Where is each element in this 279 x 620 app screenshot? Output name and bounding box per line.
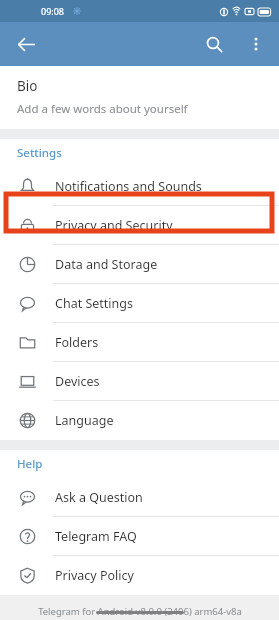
staticText: Help — [17, 456, 43, 472]
button[interactable]: Ask a Question — [0, 478, 279, 517]
staticText: Folders — [55, 334, 99, 351]
staticText: Telegram for Android v8.0.0 (2406) arm64… — [38, 605, 242, 618]
button[interactable]: Bio — [0, 66, 279, 129]
button[interactable]: Search — [196, 26, 232, 62]
button[interactable]: Back — [8, 26, 44, 62]
staticText: Privacy and Security — [55, 217, 173, 234]
staticText: Ask a Question — [55, 489, 143, 506]
staticText: 09:08 — [41, 5, 65, 17]
button[interactable]: Privacy Policy — [0, 556, 279, 595]
button[interactable]: More options — [238, 26, 274, 62]
staticText: Devices — [55, 373, 100, 390]
button[interactable]: Chat Settings — [0, 284, 279, 323]
staticText: Data and Storage — [55, 256, 158, 273]
button[interactable]: Telegram FAQ — [0, 517, 279, 556]
staticText: Bio — [17, 77, 38, 95]
button[interactable]: Data and Storage — [0, 245, 279, 284]
button[interactable]: Devices — [0, 362, 279, 401]
button[interactable]: Notifications and Sounds — [0, 167, 279, 206]
button[interactable]: Privacy and Security — [0, 206, 279, 245]
staticText: Chat Settings — [55, 295, 133, 312]
staticText: Language — [55, 412, 114, 429]
staticText: Notifications and Sounds — [55, 178, 202, 195]
staticText: Privacy Policy — [55, 567, 134, 584]
staticText: Telegram FAQ — [55, 528, 137, 545]
staticText: Settings — [17, 145, 62, 161]
button[interactable]: Folders — [0, 323, 279, 362]
staticText: Add a few words about yourself — [17, 101, 188, 117]
button[interactable]: Language — [0, 401, 279, 440]
